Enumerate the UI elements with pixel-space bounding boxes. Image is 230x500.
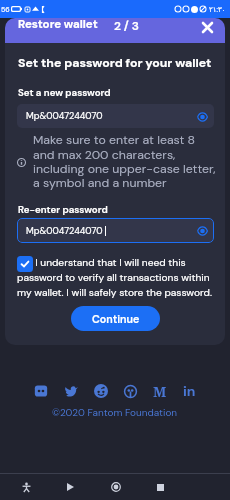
- button[interactable]: I understand: [17, 256, 33, 272]
- staticText: 56: [1, 5, 10, 14]
- staticText: Restore wallet: [18, 18, 98, 32]
- staticText: 2 / 3: [114, 18, 139, 34]
- staticText: Re-enter password: [18, 203, 108, 216]
- button[interactable]: Close: [198, 18, 217, 37]
- button[interactable]: LinkedIn: [180, 382, 198, 400]
- staticText: ©2020 Fantom Foundation: [52, 406, 178, 419]
- button[interactable]: Home: [105, 474, 127, 500]
- button[interactable]: Mp&0047244070: [17, 218, 214, 243]
- button[interactable]: Reddit: [92, 382, 110, 400]
- staticText: Make sure to enter at least 8 and max 20…: [17, 132, 219, 191]
- button[interactable]: Show password: [195, 223, 210, 238]
- staticText: I understand that I will need this passw…: [17, 256, 223, 299]
- staticText: Continue: [92, 312, 140, 326]
- button[interactable]: Recents: [149, 474, 171, 500]
- staticText: ۲۱:۳۰: [209, 5, 226, 14]
- staticText: Mp&0047244070: [26, 225, 103, 237]
- staticText: M: [153, 382, 167, 400]
- button[interactable]: Mp&0047244070: [17, 104, 214, 128]
- button[interactable]: Discord: [32, 382, 50, 400]
- button[interactable]: Twitter: [62, 382, 80, 400]
- staticText: Set a new password: [18, 86, 111, 99]
- button[interactable]: Accessibility: [15, 474, 37, 500]
- staticText: Mp&0047244070: [26, 110, 103, 122]
- button[interactable]: Back: [59, 474, 81, 500]
- staticText: in: [183, 382, 196, 400]
- staticText: Set the password for your wallet: [18, 55, 212, 71]
- button[interactable]: GitHub: [121, 382, 139, 400]
- button[interactable]: Continue: [71, 306, 160, 331]
- button[interactable]: Medium: [151, 382, 169, 400]
- button[interactable]: Show password: [195, 109, 210, 124]
